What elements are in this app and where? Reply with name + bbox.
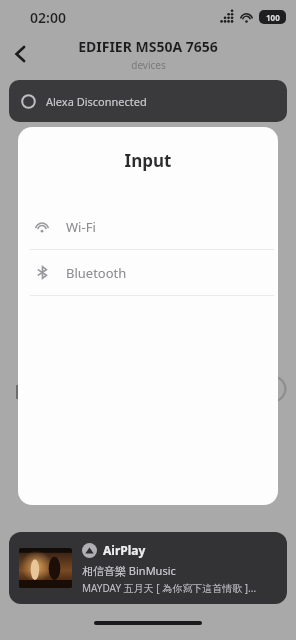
staticText: devices <box>131 58 166 72</box>
staticText: AirPlay <box>103 542 146 558</box>
button[interactable]: Bluetooth <box>18 250 278 295</box>
staticText: 02:00 <box>30 8 66 27</box>
staticText: 相信音樂 BinMusic <box>82 563 176 578</box>
staticText: Bluetooth <box>66 264 127 282</box>
staticText: Wi-Fi <box>66 218 96 236</box>
staticText: EDIFIER MS50A 7656 <box>78 37 218 56</box>
button[interactable]: AirPlay <box>9 532 287 604</box>
staticText: Alexa Disconnected <box>46 94 147 109</box>
staticText: Input <box>18 149 278 172</box>
button[interactable]: Alexa Disconnected <box>9 80 287 122</box>
button[interactable]: Back <box>4 37 38 71</box>
button[interactable]: Wi-Fi <box>18 204 278 249</box>
staticText: 100 <box>266 12 280 23</box>
staticText: MAYDAY 五月天 [ 為你寫下這首情歌 ]... <box>82 581 257 595</box>
